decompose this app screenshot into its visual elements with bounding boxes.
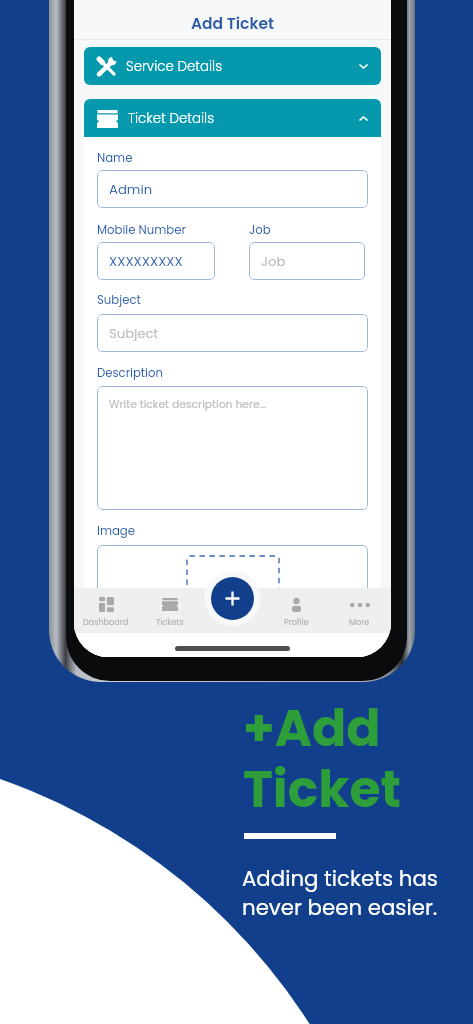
staticText: Adding tickets has never been easier. [242,864,438,922]
staticText: Profile [284,616,309,627]
button[interactable]: More [328,588,391,627]
staticText: More [349,616,370,627]
staticText: Write ticket description here… [109,397,266,412]
staticText: Description [97,365,163,381]
staticText: Name [97,150,133,166]
button[interactable]: Subject [97,314,368,352]
button[interactable]: Add Ticket [74,7,391,40]
staticText: Service Details [126,57,222,76]
button[interactable]: Tickets [138,588,202,627]
staticText: Ticket Details [128,109,214,128]
button[interactable]: Write ticket description here… [97,386,368,510]
button[interactable]: Job [249,242,365,280]
staticText: Job [261,252,286,270]
staticText: Subject [97,292,141,308]
button[interactable]: XXXXXXXXX [97,242,215,280]
staticText: Add Ticket [191,13,275,35]
button[interactable]: Dashboard [74,588,138,627]
button[interactable]: Add ticket [211,577,254,620]
staticText: Job [249,222,271,238]
staticText: Tickets [156,616,184,627]
button[interactable]: Admin [97,170,368,208]
staticText: +Add Ticket [243,693,402,824]
staticText: XXXXXXXXX [109,252,183,270]
staticText: Subject [109,324,159,342]
button[interactable]: Ticket Details [84,99,381,137]
staticText: Mobile Number [97,222,186,238]
staticText: Image [97,523,135,539]
staticText: Admin [109,180,153,198]
button[interactable]: Service Details [84,47,381,85]
button[interactable]: Upload image [187,556,279,618]
staticText: Dashboard [83,616,129,627]
button[interactable]: Profile [265,588,328,627]
